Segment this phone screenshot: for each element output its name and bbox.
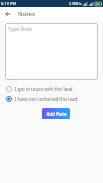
button[interactable]: Type Note xyxy=(5,23,98,80)
staticText: I got in touch with this lead xyxy=(15,86,73,92)
staticText: Type Note xyxy=(8,26,32,33)
button[interactable]: I got in touch with this lead xyxy=(0,85,103,93)
staticText: I have not contacted this lead xyxy=(15,96,78,102)
button[interactable]: Back xyxy=(3,9,13,19)
button[interactable]: I have not contacted this lead xyxy=(0,95,103,103)
staticText: 6:10 PM xyxy=(1,1,17,6)
staticText: 2.5KB/s xyxy=(69,1,82,6)
staticText: Add Note xyxy=(46,111,67,117)
staticText: Notes xyxy=(18,10,35,18)
button[interactable]: Add Note xyxy=(42,108,70,119)
